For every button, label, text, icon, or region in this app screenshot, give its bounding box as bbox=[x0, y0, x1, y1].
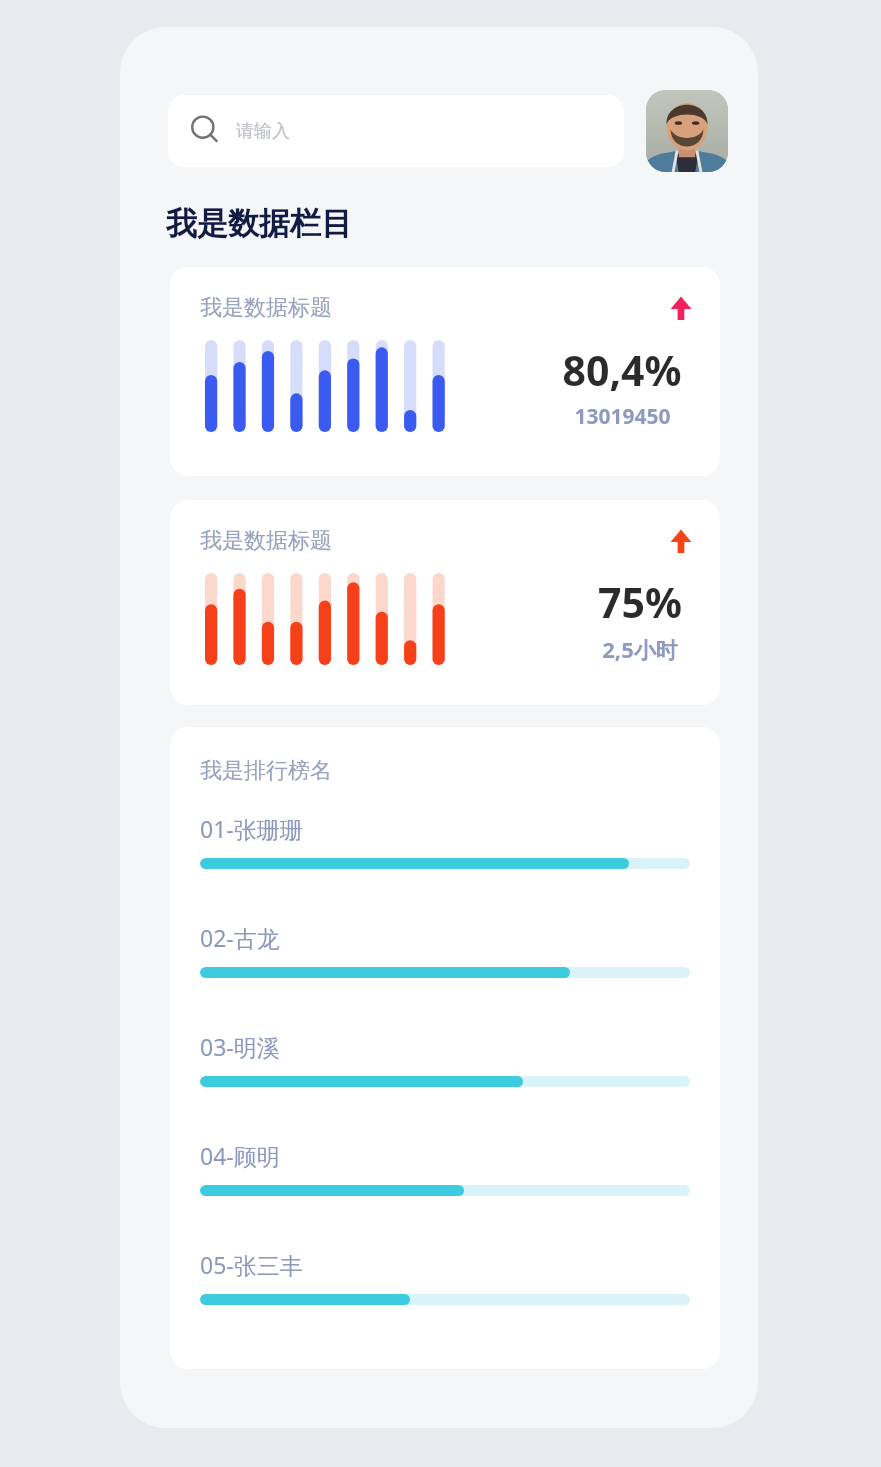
staticText: 我是排行榜名 bbox=[200, 757, 332, 785]
staticText: 请输入 bbox=[236, 120, 290, 143]
button[interactable]: 02-古龙 bbox=[170, 922, 720, 978]
staticText: 80,4% bbox=[562, 342, 682, 398]
staticText: 我是数据标题 bbox=[200, 294, 332, 322]
button[interactable]: 我是数据标题 bbox=[170, 267, 720, 476]
staticText: 我是数据栏目 bbox=[166, 204, 352, 243]
staticText: 04-顾明 bbox=[200, 1140, 280, 1171]
staticText: 13019450 bbox=[574, 402, 671, 431]
button[interactable]: 05-张三丰 bbox=[170, 1249, 720, 1305]
other: Trending up bbox=[668, 528, 694, 554]
staticText: 75% bbox=[598, 574, 682, 630]
staticText: 02-古龙 bbox=[200, 922, 280, 953]
staticText: 03-明溪 bbox=[200, 1031, 280, 1062]
other: Search bbox=[190, 115, 222, 147]
button[interactable]: 我是数据标题 bbox=[170, 500, 720, 705]
staticText: 2,5小时 bbox=[602, 634, 678, 664]
button[interactable]: Profile bbox=[646, 90, 728, 172]
button[interactable]: Search bbox=[168, 95, 624, 167]
staticText: 我是数据标题 bbox=[200, 527, 332, 555]
button[interactable]: 01-张珊珊 bbox=[170, 813, 720, 869]
button[interactable]: 03-明溪 bbox=[170, 1031, 720, 1087]
staticText: 05-张三丰 bbox=[200, 1249, 303, 1280]
other: Trending up bbox=[668, 295, 694, 321]
staticText: 01-张珊珊 bbox=[200, 813, 303, 844]
button[interactable]: 04-顾明 bbox=[170, 1140, 720, 1196]
